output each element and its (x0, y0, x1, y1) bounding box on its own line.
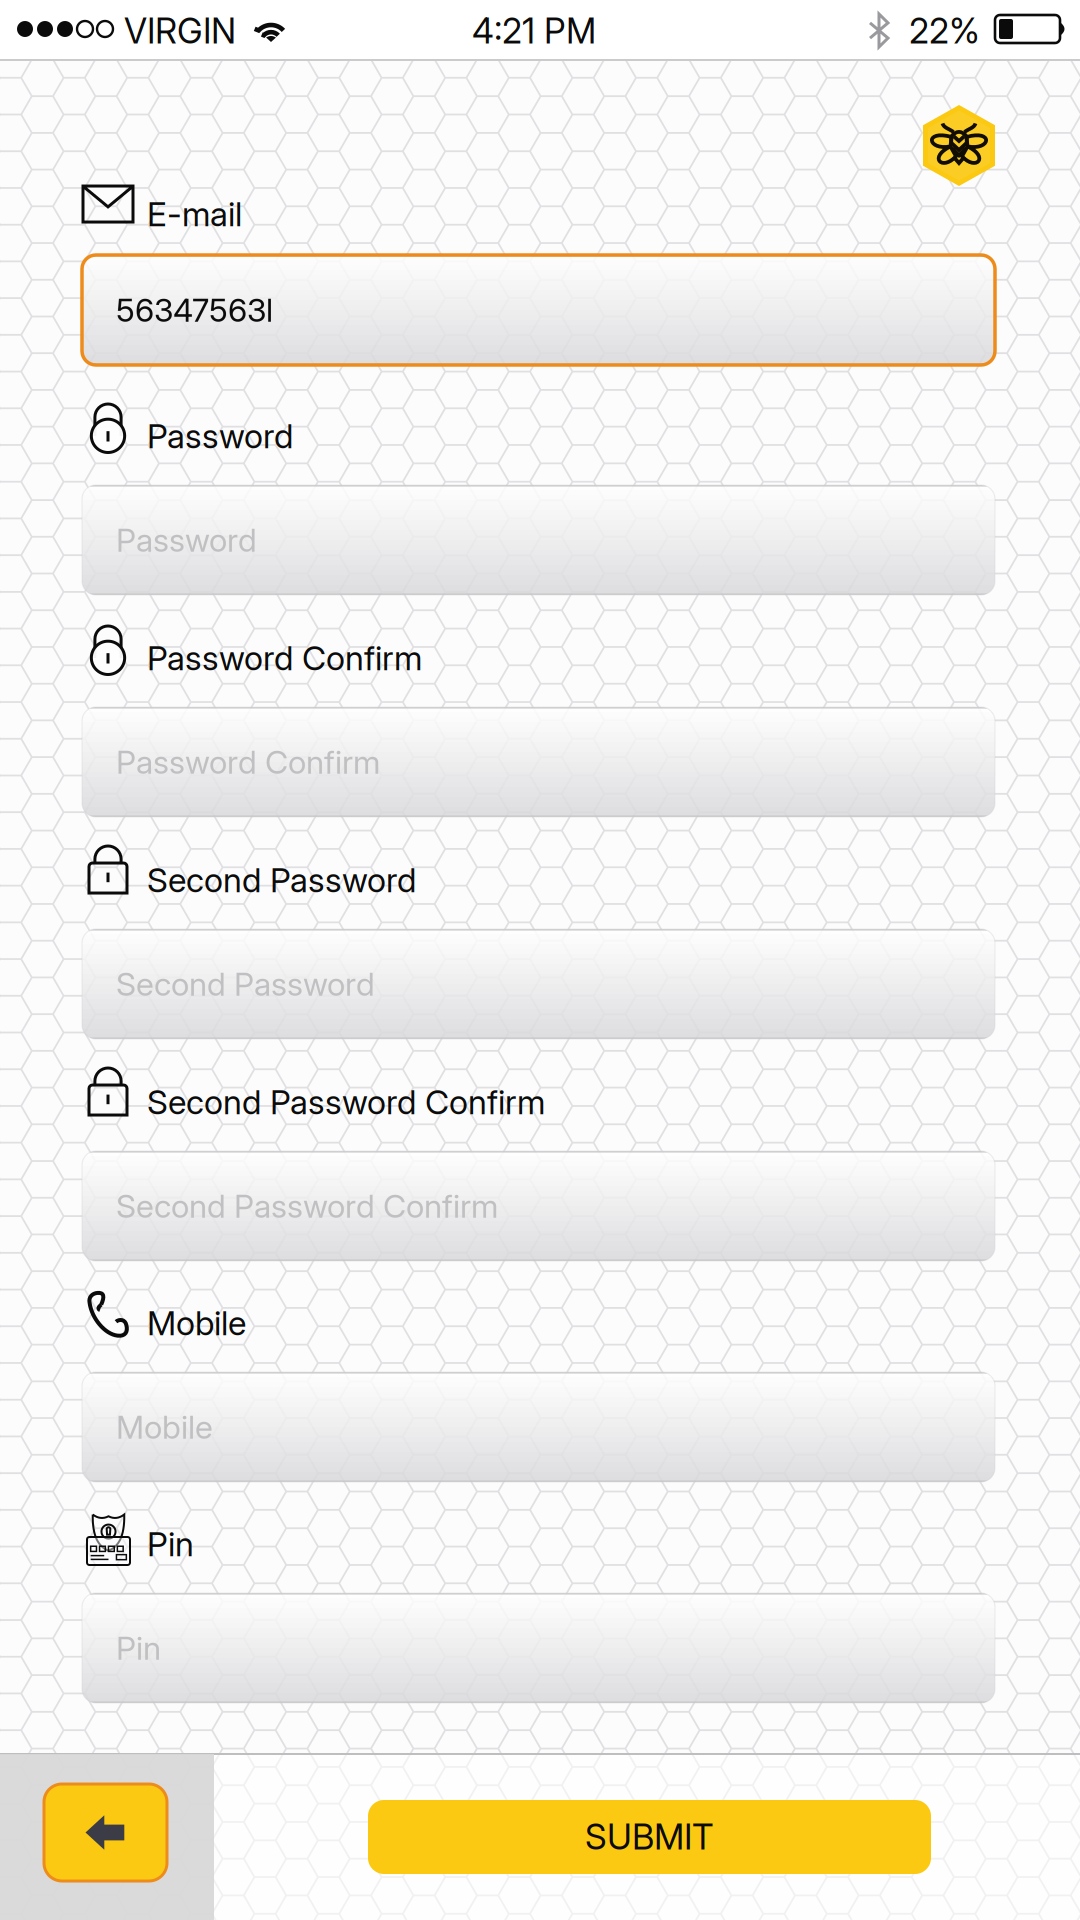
staticText: Password (147, 416, 293, 456)
staticText: Second Password Confirm (147, 1082, 545, 1122)
button[interactable]: Password Confirm (82, 707, 995, 817)
staticText: Second Password (147, 860, 416, 900)
button[interactable]: SUBMIT (368, 1800, 931, 1874)
staticText: SUBMIT (585, 1816, 714, 1858)
button[interactable]: Second Password (82, 929, 995, 1039)
staticText: Pin (116, 1629, 161, 1667)
button[interactable]: App logo (923, 105, 995, 186)
staticText: Pin (147, 1524, 194, 1564)
button[interactable]: Mobile (82, 1372, 995, 1482)
button[interactable]: 56347563l (82, 255, 995, 365)
staticText: Mobile (147, 1303, 246, 1343)
staticText: 4:21 PM (472, 10, 596, 52)
staticText: Password Confirm (147, 638, 422, 678)
staticText: E-mail (147, 194, 242, 234)
staticText: Password (116, 521, 257, 559)
staticText: 22% (909, 10, 980, 52)
staticText: Second Password (116, 965, 375, 1003)
staticText: Mobile (116, 1408, 213, 1446)
staticText: 56347563l (116, 291, 273, 329)
staticText: Second Password Confirm (116, 1187, 498, 1225)
staticText: Password Confirm (116, 743, 380, 781)
button[interactable]: Second Password Confirm (82, 1151, 995, 1261)
button[interactable]: Password (82, 485, 995, 595)
button[interactable]: Back (44, 1784, 167, 1881)
button[interactable]: Pin (82, 1593, 995, 1703)
staticText: VIRGIN (124, 10, 236, 52)
